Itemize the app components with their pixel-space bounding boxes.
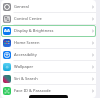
staticText: Accessibility [14, 52, 37, 58]
button[interactable]: Control Centre [0, 13, 100, 25]
staticText: Home Screen [14, 40, 40, 46]
staticText: Display & Brightness [14, 28, 54, 34]
button[interactable]: AA [0, 25, 100, 37]
staticText: General [14, 4, 29, 10]
button[interactable]: Accessibility [0, 49, 100, 61]
button[interactable]: Siri & Search [0, 73, 100, 85]
button[interactable]: Wallpaper [0, 61, 100, 73]
staticText: Face ID & Passcode [14, 88, 51, 94]
button[interactable]: Face ID & Passcode [0, 85, 100, 97]
staticText: Siri & Search [14, 76, 38, 82]
button[interactable]: General [0, 1, 100, 13]
button[interactable]: Home Screen [0, 37, 100, 49]
staticText: AA [4, 28, 10, 34]
staticText: Wallpaper [14, 64, 34, 70]
staticText: Control Centre [14, 16, 42, 22]
